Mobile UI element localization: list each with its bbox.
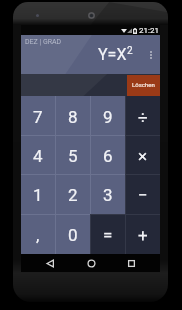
- staticText: 7: [33, 107, 43, 127]
- button[interactable]: 5: [55, 135, 90, 174]
- button[interactable]: 1: [21, 174, 55, 214]
- button[interactable]: More options: [144, 45, 158, 64]
- button[interactable]: =: [90, 214, 125, 254]
- button[interactable]: 7: [21, 96, 55, 135]
- button[interactable]: ,: [21, 214, 55, 254]
- staticText: Y=X: [98, 45, 127, 64]
- staticText: =: [103, 225, 113, 245]
- button[interactable]: 4: [21, 135, 55, 174]
- staticText: 2: [68, 185, 78, 205]
- staticText: 1: [33, 185, 43, 205]
- staticText: 3: [103, 185, 113, 205]
- staticText: Löschen: [132, 81, 155, 88]
- button[interactable]: ×: [125, 135, 160, 174]
- button[interactable]: 3: [90, 174, 125, 214]
- staticText: ×: [138, 146, 148, 166]
- button[interactable]: −: [125, 174, 160, 214]
- button[interactable]: 8: [55, 96, 90, 135]
- staticText: ,: [36, 225, 40, 245]
- staticText: 0: [68, 225, 78, 245]
- button[interactable]: Home: [80, 254, 102, 272]
- staticText: ÷: [138, 107, 148, 127]
- staticText: 2: [127, 45, 133, 57]
- staticText: 4: [33, 146, 43, 166]
- button[interactable]: ÷: [125, 96, 160, 135]
- staticText: DEZ | GRAD: [25, 38, 62, 46]
- button[interactable]: 6: [90, 135, 125, 174]
- button[interactable]: Recent apps: [120, 254, 142, 272]
- staticText: 5: [68, 146, 78, 166]
- button[interactable]: +: [125, 214, 160, 254]
- button[interactable]: 9: [90, 96, 125, 135]
- staticText: −: [138, 185, 148, 205]
- button[interactable]: Löschen: [127, 75, 160, 96]
- staticText: 21:21: [139, 26, 159, 35]
- staticText: 8: [68, 107, 78, 127]
- button[interactable]: 0: [55, 214, 90, 254]
- staticText: +: [138, 225, 148, 245]
- button[interactable]: Back: [39, 254, 61, 272]
- staticText: 9: [103, 107, 113, 127]
- staticText: 6: [103, 146, 113, 166]
- button[interactable]: 2: [55, 174, 90, 214]
